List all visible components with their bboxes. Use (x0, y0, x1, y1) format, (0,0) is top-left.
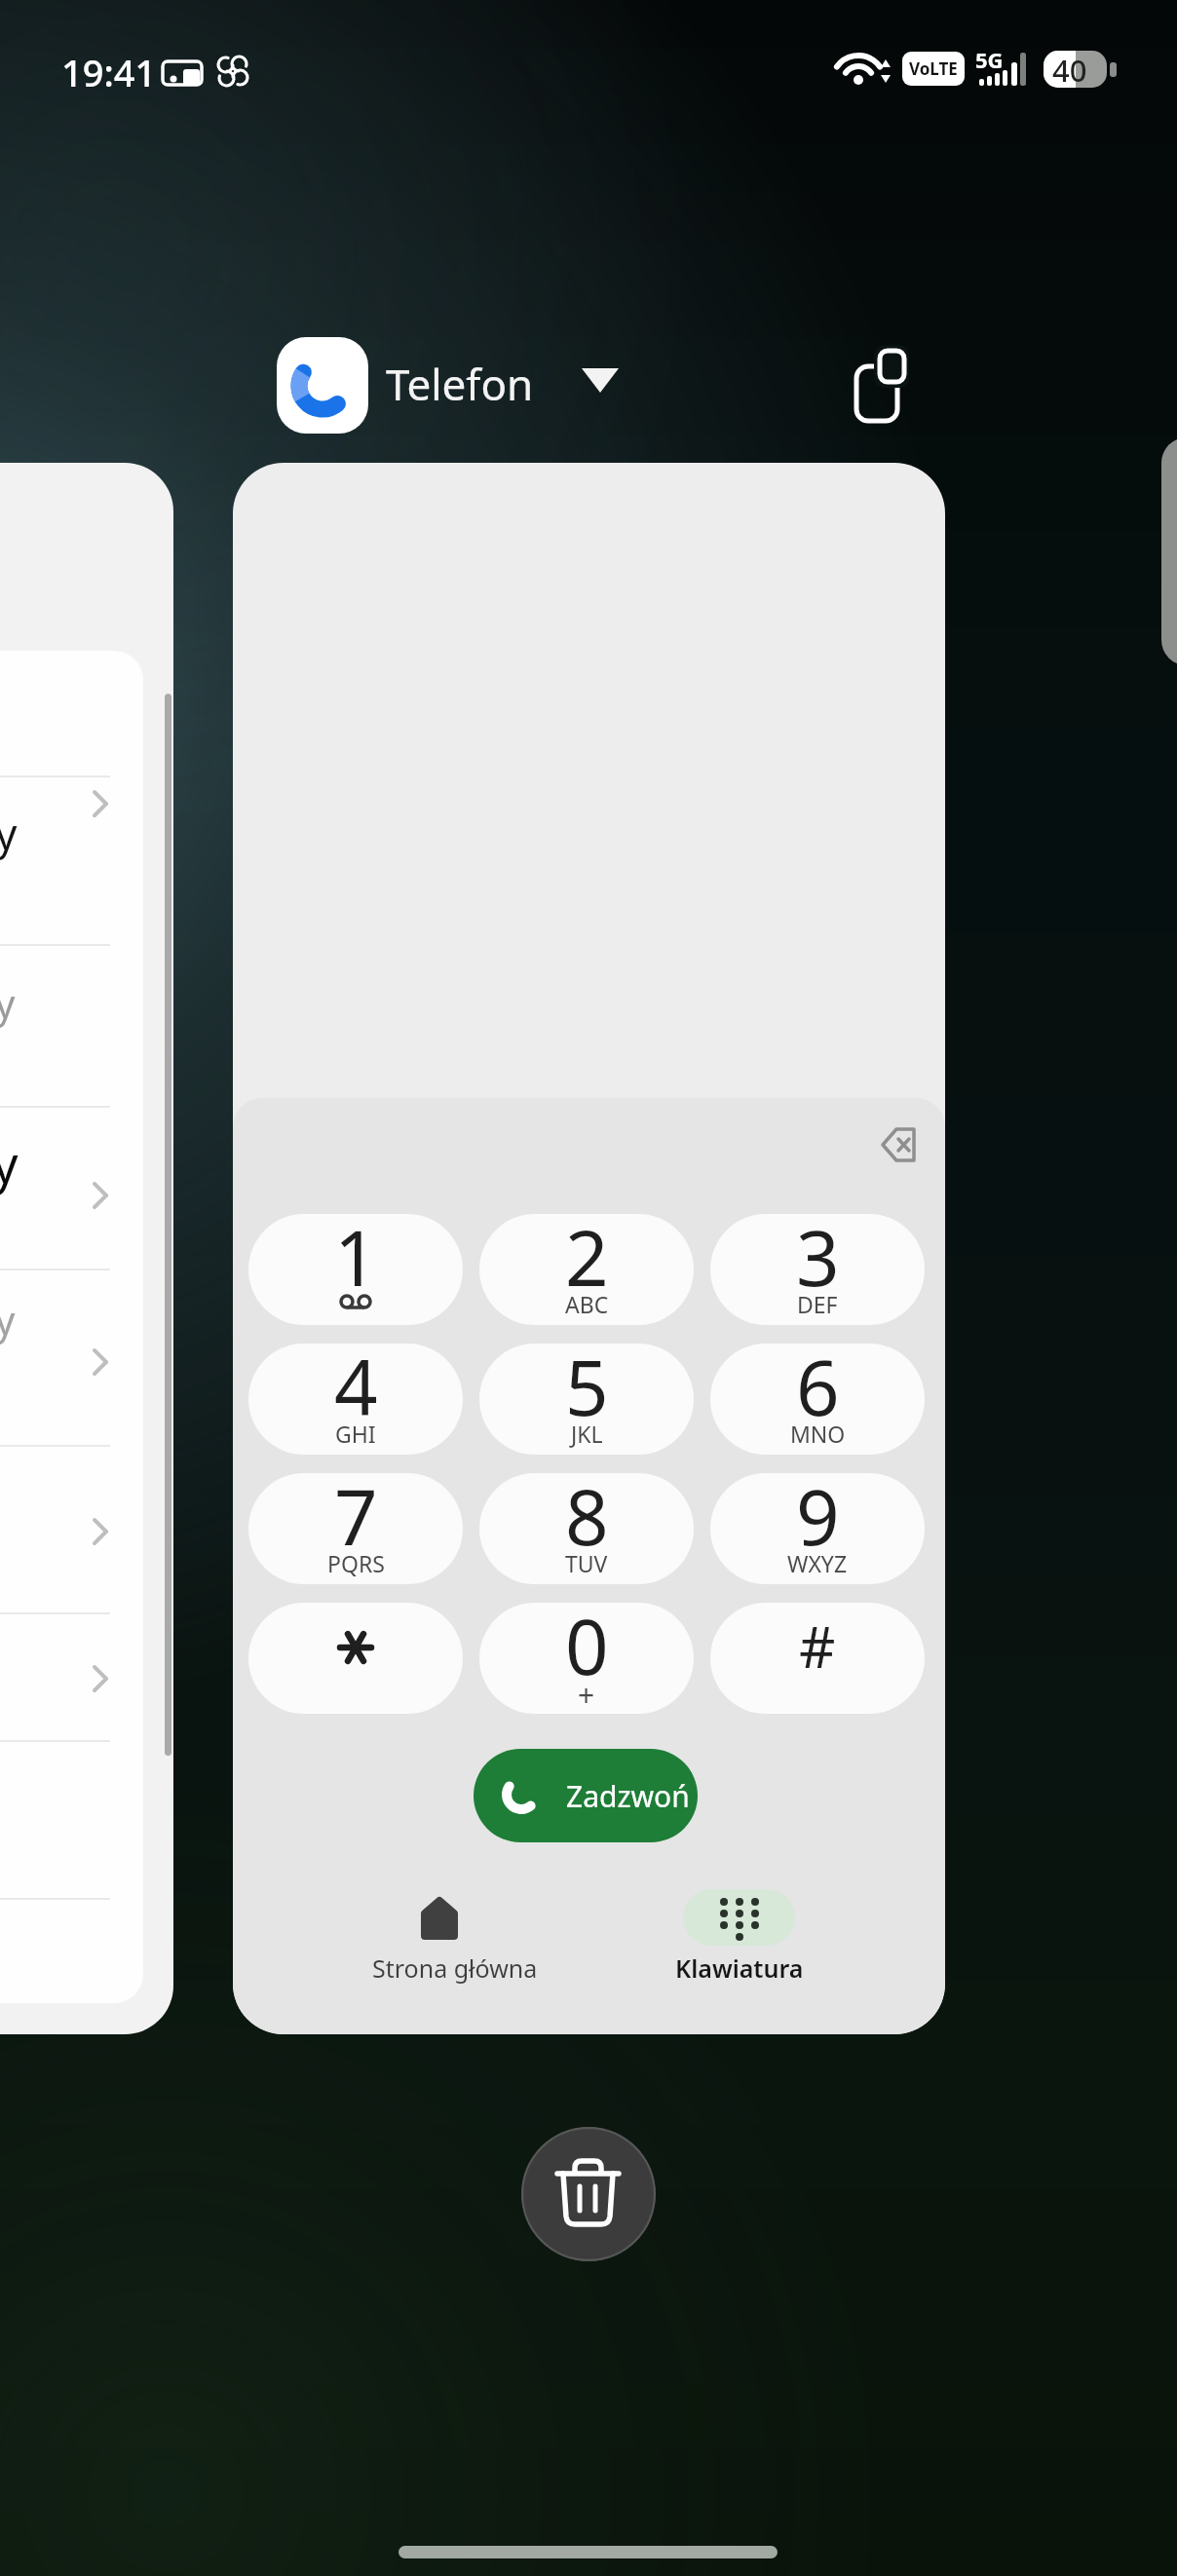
button[interactable]: 8 (479, 1473, 694, 1584)
staticText: DEF (797, 1289, 838, 1319)
button[interactable]: 1 (248, 1214, 463, 1325)
button[interactable] (521, 2127, 656, 2261)
button[interactable]: Zadzwoń (474, 1749, 698, 1842)
button[interactable]: 4 (248, 1344, 463, 1455)
staticText: 3 (796, 1214, 840, 1308)
button[interactable]: # (710, 1603, 925, 1714)
button[interactable]: 6 (710, 1344, 925, 1455)
staticText: PQRS (327, 1548, 385, 1578)
staticText: 5G (975, 45, 1004, 74)
staticText: y (0, 804, 18, 862)
staticText: JKL (571, 1419, 603, 1449)
button[interactable]: Telefon (386, 343, 629, 425)
staticText: 9 (796, 1473, 840, 1568)
button[interactable]: 0 (479, 1603, 694, 1714)
button[interactable] (277, 337, 368, 434)
staticText: y (0, 1128, 19, 1197)
staticText: + (578, 1675, 595, 1710)
button[interactable]: 7 (248, 1473, 463, 1584)
button[interactable] (399, 2546, 778, 2558)
staticText: ABC (565, 1289, 609, 1319)
button[interactable] (838, 343, 920, 431)
button[interactable]: Klawiatura (662, 1880, 817, 2007)
staticText: 4 (334, 1344, 378, 1438)
staticText: 40 (1052, 50, 1087, 91)
staticText: WXYZ (787, 1548, 848, 1578)
staticText: TUV (565, 1548, 608, 1578)
staticText: MNO (790, 1419, 846, 1449)
staticText: 2 (565, 1214, 609, 1308)
staticText: Telefon (386, 355, 534, 413)
staticText: VoLTE (909, 57, 958, 80)
staticText: y (0, 976, 16, 1029)
staticText: 0 (565, 1603, 609, 1697)
staticText: 8 (565, 1473, 609, 1568)
staticText: # (799, 1608, 836, 1685)
button[interactable]: 5 (479, 1344, 694, 1455)
staticText: 7 (334, 1473, 378, 1568)
staticText: 6 (796, 1344, 840, 1438)
staticText: 5 (565, 1344, 609, 1438)
button[interactable]: 2 (479, 1214, 694, 1325)
staticText: GHI (335, 1419, 376, 1449)
staticText: y (0, 1293, 16, 1345)
staticText: 19:41 (61, 47, 157, 97)
button[interactable] (248, 1603, 463, 1714)
staticText: 1 (334, 1214, 378, 1308)
staticText: Zadzwoń (566, 1776, 690, 1816)
button[interactable]: 3 (710, 1214, 925, 1325)
button[interactable]: Strona główna (350, 1880, 559, 2007)
staticText: Strona główna (372, 1951, 538, 1985)
button[interactable]: 9 (710, 1473, 925, 1584)
staticText: Klawiatura (675, 1951, 804, 1985)
